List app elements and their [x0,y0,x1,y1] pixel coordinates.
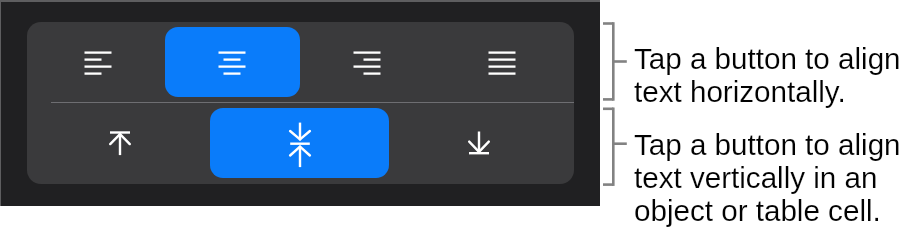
staticText: Tap a button to align text vertically in… [634,128,910,227]
button[interactable]: Align text center [165,27,300,97]
button[interactable]: Align text middle [210,108,389,178]
staticText: Tap a button to align text horizontally. [634,42,910,108]
button[interactable]: Align text top [31,108,210,178]
button[interactable]: Align text right [300,27,434,97]
button[interactable]: Align text left [30,27,165,97]
button[interactable]: Justify text [434,27,568,97]
button[interactable]: Align text bottom [389,108,568,178]
